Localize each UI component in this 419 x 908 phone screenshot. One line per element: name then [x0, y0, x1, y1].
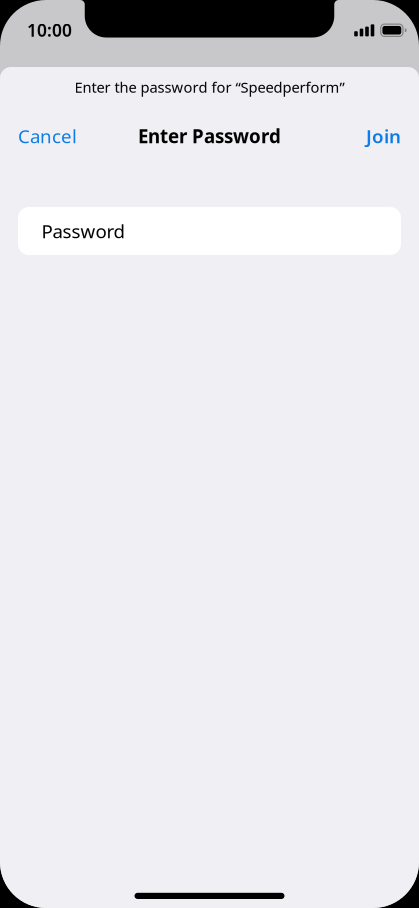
staticText: 10:00 [27, 18, 72, 41]
staticText: Enter Password [138, 124, 281, 148]
button[interactable]: Cancel [0, 114, 89, 158]
staticText: Cancel [18, 124, 77, 148]
staticText: Join [366, 124, 401, 148]
button[interactable]: Join [354, 114, 419, 158]
staticText: Password [41, 219, 124, 243]
button[interactable]: Password [18, 207, 401, 255]
staticText: Enter the password for “Speedperform” [74, 77, 344, 97]
